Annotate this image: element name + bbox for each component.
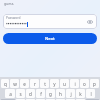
button[interactable]: Next: [3, 33, 97, 44]
button[interactable]: t: [40, 79, 49, 88]
staticText: ••••••••••••: [6, 21, 27, 27]
staticText: e: [23, 81, 26, 87]
staticText: w: [13, 81, 17, 87]
button[interactable]: l: [86, 89, 95, 98]
button[interactable]: p: [90, 79, 99, 88]
staticText: Password: [6, 16, 21, 20]
button[interactable]: o: [80, 79, 89, 88]
staticText: u: [63, 81, 66, 87]
button[interactable]: r: [30, 79, 39, 88]
staticText: q: [4, 81, 7, 87]
button[interactable]: j: [66, 89, 75, 98]
staticText: l: [90, 91, 92, 97]
staticText: o: [83, 81, 86, 87]
staticText: g: [49, 91, 52, 97]
staticText: t: [44, 81, 46, 87]
button[interactable]: d: [26, 89, 35, 98]
staticText: i: [74, 81, 76, 87]
button[interactable]: e: [20, 79, 29, 88]
staticText: guess.: [4, 1, 15, 6]
button[interactable]: g: [46, 89, 55, 98]
staticText: p: [93, 81, 96, 87]
button[interactable]: u: [60, 79, 69, 88]
staticText: a: [9, 91, 12, 97]
button[interactable]: a: [5, 89, 15, 98]
button[interactable]: Password: [3, 14, 97, 29]
staticText: j: [70, 91, 72, 97]
staticText: h: [59, 91, 62, 97]
button[interactable]: s: [16, 89, 25, 98]
button[interactable]: h: [56, 89, 65, 98]
staticText: f: [40, 91, 42, 97]
button[interactable]: i: [70, 79, 79, 88]
staticText: r: [34, 81, 36, 87]
staticText: Next: [45, 36, 55, 42]
staticText: d: [29, 91, 32, 97]
button[interactable]: f: [36, 89, 45, 98]
staticText: y: [53, 81, 56, 87]
button[interactable]: w: [10, 79, 19, 88]
staticText: s: [19, 91, 22, 97]
button[interactable]: q: [1, 79, 9, 88]
button[interactable]: y: [50, 79, 59, 88]
button[interactable]: k: [76, 89, 85, 98]
button[interactable]: Show password: [86, 18, 94, 26]
staticText: k: [79, 91, 82, 97]
